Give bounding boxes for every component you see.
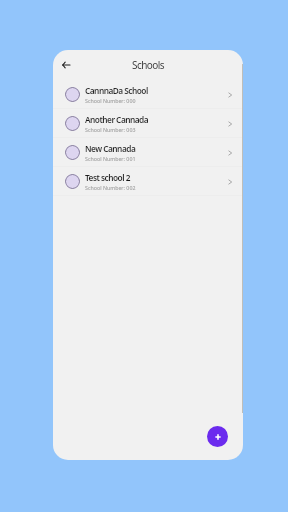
staticText: New Cannada xyxy=(85,143,136,154)
button[interactable]: Test school 2 xyxy=(53,167,243,196)
button[interactable]: New Cannada xyxy=(53,138,243,167)
staticText: CannnaDa School xyxy=(85,85,148,96)
staticText: Another Cannada xyxy=(85,114,149,125)
staticText: School Number: 002 xyxy=(85,184,136,191)
staticText: School Number: 001 xyxy=(85,155,136,162)
staticText: School Number: 003 xyxy=(85,126,136,133)
staticText: Test school 2 xyxy=(85,172,130,183)
button[interactable]: Add school xyxy=(207,426,228,447)
staticText: School Number: 000 xyxy=(85,97,136,104)
button[interactable]: Another Cannada xyxy=(53,109,243,138)
button[interactable]: Back xyxy=(56,55,76,75)
button[interactable]: CannnaDa School xyxy=(53,80,243,109)
staticText: Schools xyxy=(132,58,165,72)
